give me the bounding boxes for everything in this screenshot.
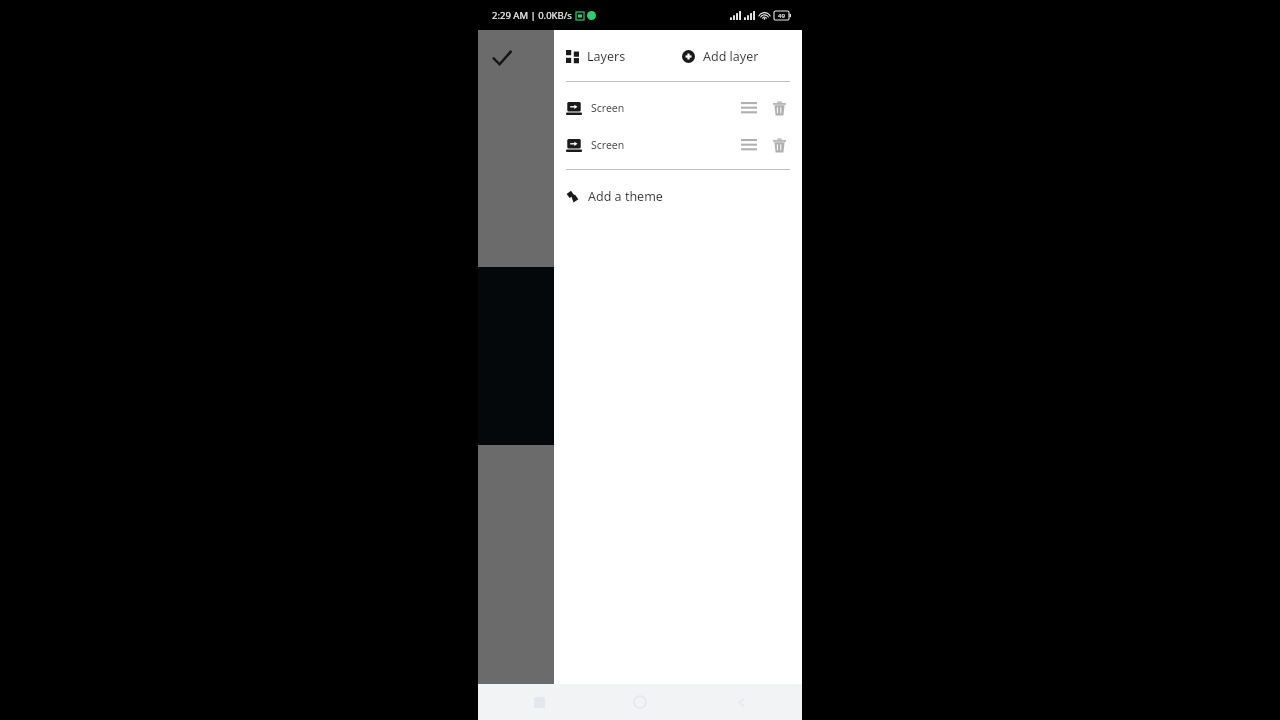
button[interactable]: Confirm xyxy=(478,30,554,267)
staticText: Add a theme xyxy=(588,188,663,205)
staticText: Screen xyxy=(591,101,625,115)
button[interactable]: Recents xyxy=(526,689,552,715)
button[interactable]: Add layer xyxy=(682,48,759,65)
button[interactable]: Reorder layer xyxy=(738,134,760,156)
button[interactable]: Delete layer xyxy=(768,97,790,119)
button[interactable]: Screen xyxy=(554,133,802,157)
button[interactable]: Screen xyxy=(554,96,802,120)
staticText: 2:29 AM | 0.0KB/s xyxy=(492,9,572,22)
staticText: Screen xyxy=(591,138,625,152)
button[interactable]: Add a theme xyxy=(554,183,802,209)
button[interactable]: Layers xyxy=(566,48,626,65)
staticText: 49 xyxy=(778,12,785,20)
button[interactable]: Delete layer xyxy=(768,134,790,156)
staticText: Add layer xyxy=(703,48,759,65)
button[interactable]: Home xyxy=(627,689,653,715)
button[interactable]: Reorder layer xyxy=(738,97,760,119)
staticText: Layers xyxy=(587,48,626,65)
